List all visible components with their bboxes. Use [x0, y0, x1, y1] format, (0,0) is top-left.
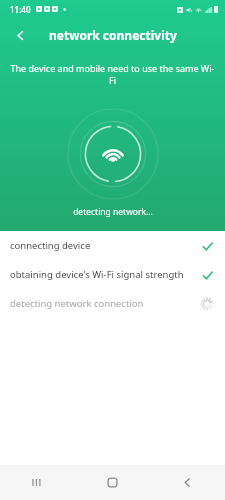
button[interactable]: Home	[75, 465, 150, 500]
button[interactable]: connecting device	[0, 231, 225, 260]
staticText: The device and mobile need to use the sa…	[10, 62, 215, 86]
button[interactable]: detecting network connection	[0, 289, 225, 318]
button[interactable]: obtaining device's Wi-Fi signal strength	[0, 260, 225, 289]
staticText: detecting network connection	[10, 297, 200, 310]
button[interactable]: Back	[4, 19, 36, 51]
button[interactable]: Recent apps	[0, 465, 75, 500]
staticText: obtaining device's Wi-Fi signal strength	[10, 268, 200, 281]
staticText: connecting device	[10, 239, 200, 252]
staticText: 11:40	[10, 4, 31, 15]
staticText: network connectivity	[49, 27, 177, 43]
staticText: detecting network...	[73, 206, 153, 218]
button[interactable]: Back	[150, 465, 225, 500]
